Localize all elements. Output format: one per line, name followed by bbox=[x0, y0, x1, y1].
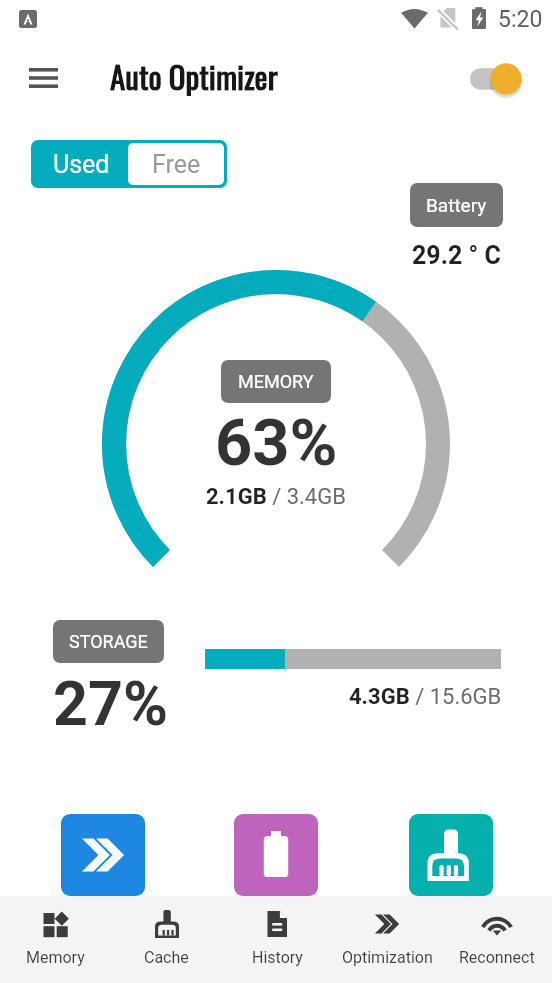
staticText: 63% bbox=[215, 405, 338, 481]
button[interactable]: Boost bbox=[61, 814, 145, 896]
staticText: Free bbox=[152, 150, 201, 179]
button[interactable]: Battery saver bbox=[234, 814, 318, 896]
staticText: Optimization bbox=[342, 948, 433, 967]
staticText: STORAGE bbox=[69, 631, 148, 652]
staticText: Memory bbox=[26, 948, 85, 967]
staticText: Battery bbox=[426, 194, 487, 216]
button[interactable]: Reconnect bbox=[442, 896, 552, 983]
staticText: MEMORY bbox=[238, 371, 314, 392]
staticText: Used bbox=[53, 150, 110, 179]
button[interactable]: Menu bbox=[15, 52, 71, 104]
button[interactable]: Auto optimize toggle bbox=[462, 59, 524, 99]
button[interactable]: Cache bbox=[111, 896, 222, 983]
staticText: 5:20 bbox=[498, 6, 543, 33]
button[interactable]: Clean cache bbox=[409, 814, 493, 896]
staticText: 2.1GB / 3.4GB bbox=[206, 484, 346, 510]
staticText: Auto Optimizer bbox=[110, 53, 278, 99]
staticText: Reconnect bbox=[459, 948, 535, 967]
button[interactable]: Memory bbox=[0, 896, 111, 983]
button[interactable]: History bbox=[222, 896, 332, 983]
button[interactable]: Optimization bbox=[332, 896, 442, 983]
staticText: History bbox=[252, 948, 303, 967]
button[interactable]: Free bbox=[128, 143, 224, 185]
staticText: Cache bbox=[144, 948, 189, 967]
staticText: 4.3GB / 15.6GB bbox=[349, 684, 502, 710]
staticText: 29.2 ° C bbox=[412, 241, 501, 270]
button[interactable]: Used bbox=[34, 143, 128, 185]
staticText: 27% bbox=[53, 668, 169, 739]
